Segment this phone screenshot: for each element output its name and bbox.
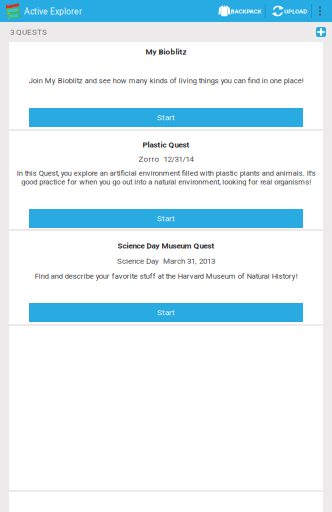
button[interactable]: Add quest bbox=[316, 27, 326, 37]
staticText: Start bbox=[157, 113, 175, 122]
staticText: BACKPACK bbox=[231, 8, 262, 15]
staticText: Start bbox=[157, 214, 175, 223]
button[interactable]: UPLOAD bbox=[266, 0, 311, 22]
button[interactable]: Start bbox=[29, 303, 303, 322]
staticText: Science Day Museum Quest bbox=[117, 241, 214, 250]
button[interactable]: Start bbox=[29, 209, 303, 228]
staticText: Plastic Quest bbox=[142, 140, 189, 149]
button[interactable]: BACKPACK bbox=[217, 0, 265, 22]
staticText: 3 QUESTS bbox=[10, 27, 47, 37]
staticText: Zorro 12/31/14 bbox=[138, 154, 193, 164]
button[interactable]: More options bbox=[312, 0, 328, 22]
staticText: Active Explorer bbox=[24, 6, 82, 16]
staticText: UPLOAD bbox=[284, 8, 307, 15]
staticText: My Bioblitz bbox=[145, 47, 186, 56]
staticText: In this Quest, you explore an artificial… bbox=[16, 169, 315, 186]
staticText: Find and describe your favorite stuff at… bbox=[34, 272, 297, 280]
staticText: Science Day March 31, 2013 bbox=[117, 256, 215, 266]
staticText: Start bbox=[157, 308, 175, 317]
staticText: Join My Bioblitz and see how many kinds … bbox=[28, 76, 303, 85]
button[interactable]: Start bbox=[29, 108, 303, 127]
